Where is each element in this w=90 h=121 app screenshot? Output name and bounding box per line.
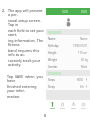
- staticText: 8: [44, 113, 46, 118]
- button[interactable]: Steps: [46, 76, 90, 83]
- staticText: Gender: [48, 65, 58, 69]
- staticText: curately track your activity.: [8, 58, 44, 67]
- staticText: Height: [48, 51, 57, 55]
- staticText: Name: [48, 37, 56, 41]
- staticText: Name: [80, 37, 88, 41]
- staticText: each field to set your start-: [8, 28, 44, 37]
- button[interactable]: Profile: [69, 100, 78, 110]
- staticText: 1990/01/01: [73, 44, 88, 48]
- staticText: mation.: [7, 94, 21, 99]
- staticText: sonal setup screen. Tap in: [8, 18, 44, 27]
- button[interactable]: Weight: [46, 56, 90, 63]
- button[interactable]: Sleep: [46, 83, 90, 90]
- staticText: ing information. The fitness: [8, 38, 44, 47]
- staticText: 60 kg: [81, 58, 88, 62]
- staticText: 8 h: [80, 85, 84, 89]
- staticText: band requires this info to ac-: [8, 48, 44, 57]
- button[interactable]: Edit: [49, 10, 81, 13]
- staticText: The app will present a per-: [8, 8, 44, 17]
- staticText: 170 cm: [78, 51, 88, 55]
- button[interactable]: Profile photo: [63, 17, 74, 28]
- staticText: Weight: [48, 58, 57, 62]
- staticText: 2.: [2, 8, 6, 13]
- button[interactable]: Name: [46, 35, 90, 42]
- button[interactable]: Birthday: [46, 42, 90, 49]
- staticText: Birthday: [48, 44, 59, 48]
- button[interactable]: Gender: [46, 63, 90, 70]
- button[interactable]: Sleep: [58, 100, 67, 110]
- staticText: finished entering your infor-: [7, 84, 44, 93]
- staticText: Male: [81, 65, 88, 69]
- staticText: 8000: [77, 78, 84, 82]
- staticText: Steps: [48, 78, 55, 82]
- button[interactable]: Settings: [79, 100, 88, 110]
- button[interactable]: Height: [46, 49, 90, 56]
- button[interactable]: Activity: [48, 100, 57, 110]
- staticText: Tap SAVE when you have: [7, 74, 44, 83]
- staticText: Sleep: [48, 85, 55, 89]
